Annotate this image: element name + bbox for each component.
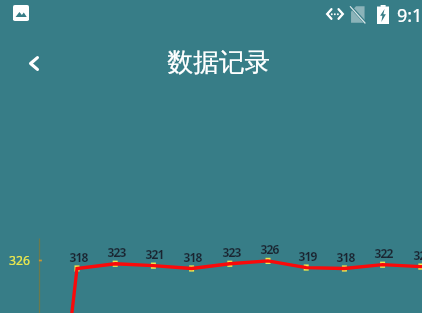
staticText: 326 [260, 241, 279, 255]
button[interactable]: 数据记录 [167, 45, 269, 80]
staticText: 320 [413, 247, 422, 261]
staticText: 318 [183, 249, 202, 263]
staticText: 9:17 [397, 3, 422, 28]
staticText: 318 [69, 249, 88, 263]
button[interactable]: Screenshot notification [13, 5, 29, 21]
staticText: 319 [298, 248, 317, 262]
staticText: 326 [9, 252, 30, 268]
staticText: 323 [107, 244, 126, 258]
staticText: 318 [336, 249, 355, 263]
staticText: 数据记录 [167, 46, 269, 79]
staticText: 322 [374, 245, 393, 259]
button[interactable]: Back [18, 47, 50, 79]
staticText: 321 [145, 246, 164, 260]
staticText: 323 [222, 244, 241, 258]
